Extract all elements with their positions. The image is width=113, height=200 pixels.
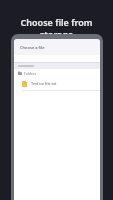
staticText: Folders — [24, 71, 37, 76]
button[interactable]: Folder — [14, 69, 100, 77]
button[interactable]: Text file — [14, 77, 100, 90]
staticText: Choose a file — [20, 45, 45, 50]
staticText: Choose file from storage — [5, 16, 108, 40]
other: Folder — [18, 71, 22, 75]
other: Text file — [22, 81, 27, 87]
staticText: Test ice file.txt — [31, 81, 57, 86]
button[interactable]: Choose a file — [14, 39, 100, 55]
